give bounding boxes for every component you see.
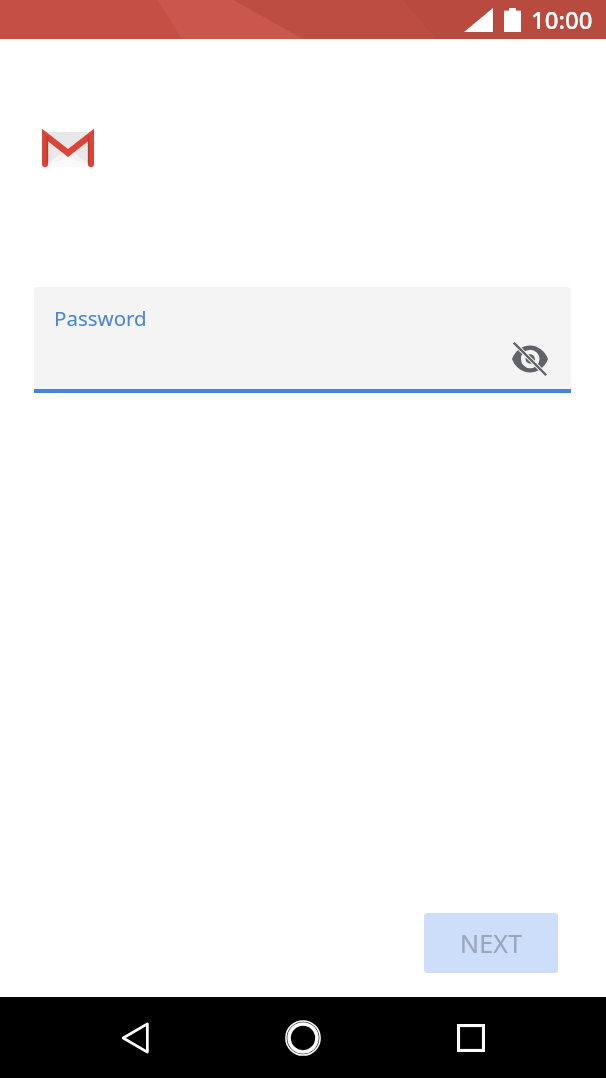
button[interactable]: Back <box>85 997 185 1078</box>
button[interactable]: Password <box>34 287 571 389</box>
button[interactable]: Home <box>253 997 353 1078</box>
button[interactable]: NEXT <box>424 913 558 973</box>
button[interactable]: Show password <box>508 337 552 381</box>
staticText: 10:00 <box>531 3 593 36</box>
staticText: Password <box>54 304 147 332</box>
staticText: NEXT <box>460 926 523 960</box>
button[interactable]: Recent apps <box>421 997 521 1078</box>
